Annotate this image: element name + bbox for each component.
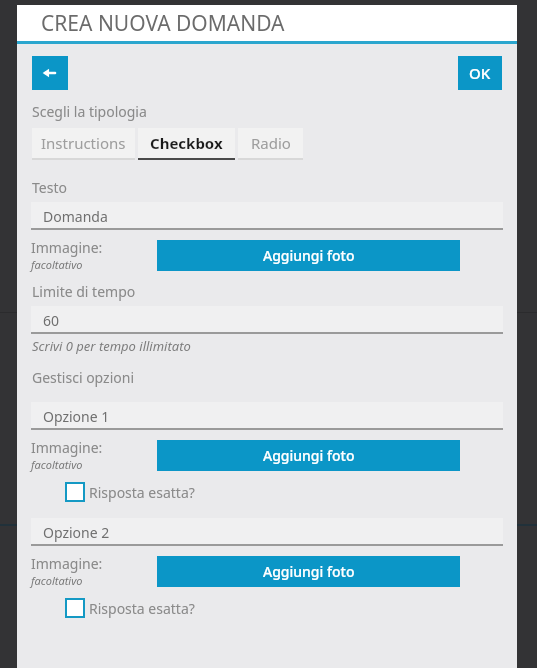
staticText: Risposta esatta? — [89, 599, 195, 618]
staticText: Limite di tempo — [32, 282, 136, 301]
button[interactable]: Aggiungi foto — [157, 556, 460, 587]
staticText: Instructions — [41, 133, 126, 153]
button[interactable]: Opzione 2 — [31, 518, 503, 546]
staticText: Opzione 1 — [43, 407, 110, 426]
button[interactable]: Checkbox — [138, 128, 235, 160]
button[interactable]: Risposta esatta? — [65, 482, 195, 502]
staticText: Risposta esatta? — [89, 483, 195, 502]
button[interactable]: Radio — [238, 128, 303, 160]
button[interactable]: OK — [458, 56, 502, 90]
staticText: Immagine: — [31, 238, 103, 257]
staticText: facoltativo — [31, 457, 83, 472]
button[interactable]: Aggiungi foto — [157, 240, 460, 271]
staticText: CREA NUOVA DOMANDA — [41, 9, 285, 38]
staticText: Aggiungi foto — [263, 246, 355, 265]
staticText: facoltativo — [31, 257, 83, 272]
staticText: Domanda — [43, 207, 108, 226]
button[interactable]: Instructions — [32, 128, 135, 160]
button[interactable]: Indietro — [32, 56, 68, 90]
button[interactable]: Domanda — [31, 202, 503, 230]
staticText: Gestisci opzioni — [32, 368, 135, 387]
staticText: Checkbox — [150, 133, 223, 153]
staticText: Aggiungi foto — [263, 446, 355, 465]
staticText: facoltativo — [31, 573, 83, 588]
button[interactable]: 60 — [31, 306, 503, 334]
staticText: OK — [469, 63, 491, 83]
staticText: Aggiungi foto — [263, 562, 355, 581]
staticText: 60 — [43, 311, 60, 330]
staticText: Immagine: — [31, 438, 103, 457]
button[interactable]: Opzione 1 — [31, 402, 503, 430]
staticText: Opzione 2 — [43, 523, 110, 542]
button[interactable]: Aggiungi foto — [157, 440, 460, 471]
staticText: Scrivi 0 per tempo illimitato — [32, 337, 191, 355]
staticText: Scegli la tipologia — [32, 102, 147, 121]
staticText: Testo — [32, 178, 67, 197]
staticText: Immagine: — [31, 554, 103, 573]
button[interactable]: Risposta esatta? — [65, 598, 195, 618]
staticText: Radio — [251, 133, 291, 153]
